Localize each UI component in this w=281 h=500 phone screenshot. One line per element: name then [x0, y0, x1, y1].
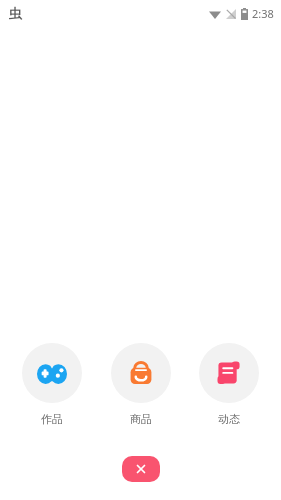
- staticText: 动态: [218, 412, 240, 426]
- staticText: 商品: [130, 412, 152, 426]
- button[interactable]: 动态: [193, 341, 265, 428]
- staticText: 虫: [9, 5, 22, 21]
- button[interactable]: 关闭: [122, 456, 160, 482]
- button[interactable]: 商品: [105, 341, 177, 428]
- staticText: 作品: [41, 412, 63, 426]
- button[interactable]: 作品: [16, 341, 88, 428]
- staticText: 2:38: [252, 6, 274, 21]
